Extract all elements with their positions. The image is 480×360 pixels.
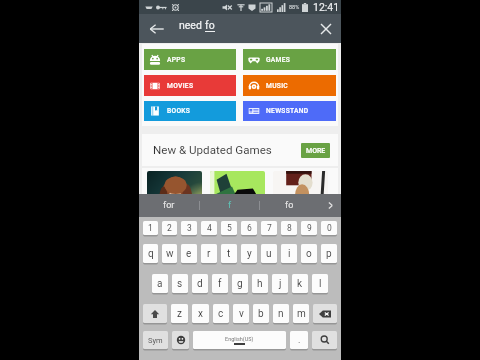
staticText: v	[239, 308, 244, 320]
button[interactable]: fo	[260, 194, 319, 217]
button[interactable]: d	[192, 274, 208, 293]
button[interactable]: a	[152, 274, 168, 293]
button[interactable]: for	[139, 194, 199, 217]
button[interactable]: f	[212, 274, 228, 293]
button[interactable]: x	[192, 304, 209, 323]
button[interactable]: q	[143, 244, 158, 263]
staticText: BOOKS	[167, 107, 191, 115]
button[interactable]: MOVIES	[144, 75, 236, 96]
staticText: MUSIC	[266, 82, 289, 90]
staticText: 5	[227, 223, 232, 233]
staticText: 3	[187, 223, 192, 233]
button[interactable]: Sym	[143, 331, 168, 349]
staticText: 1	[148, 223, 153, 233]
button[interactable]: 0	[321, 221, 337, 235]
button[interactable]: Shift	[143, 304, 167, 323]
button[interactable]: e	[181, 244, 197, 263]
button[interactable]: y	[241, 244, 257, 263]
staticText: NEWSSTAND	[266, 107, 309, 115]
staticText: z	[177, 308, 182, 320]
button[interactable]: 1	[143, 221, 158, 235]
button[interactable]	[147, 171, 202, 226]
button[interactable]: Clear search	[315, 14, 337, 43]
staticText: q	[148, 248, 154, 260]
button[interactable]: o	[301, 244, 317, 263]
staticText: r	[207, 248, 211, 260]
button[interactable]: f	[200, 194, 259, 217]
staticText: f	[228, 200, 232, 211]
button[interactable]: NEWSSTAND	[243, 101, 336, 121]
button[interactable]: 3	[181, 221, 197, 235]
button[interactable]: Back	[145, 14, 169, 43]
button[interactable]: APPS	[144, 49, 236, 70]
staticText: y	[247, 248, 252, 260]
button[interactable]: s	[172, 274, 188, 293]
staticText: for	[163, 200, 175, 211]
button[interactable]: GAMES	[243, 49, 336, 70]
staticText: fo	[285, 200, 294, 211]
button[interactable]: MORE	[301, 143, 330, 158]
button[interactable]: n	[273, 304, 289, 323]
button[interactable]: 2	[162, 221, 177, 235]
staticText: u	[266, 248, 272, 260]
button[interactable]: k	[292, 274, 308, 293]
staticText: 8	[287, 223, 292, 233]
button[interactable]: g	[232, 274, 248, 293]
staticText: 4	[207, 223, 212, 233]
button[interactable]: l	[312, 274, 328, 293]
button[interactable]: 5	[221, 221, 237, 235]
staticText: 2	[167, 223, 172, 233]
staticText: GAMES	[266, 56, 291, 64]
staticText: d	[197, 278, 203, 290]
staticText: 88%	[289, 4, 300, 10]
button[interactable]: v	[233, 304, 249, 323]
staticText: w	[166, 248, 174, 260]
staticText: 6	[247, 223, 252, 233]
button[interactable]: h	[252, 274, 268, 293]
button[interactable]: j	[272, 274, 288, 293]
staticText: 9	[307, 223, 312, 233]
staticText: j	[279, 278, 282, 290]
button[interactable]: z	[171, 304, 188, 323]
button[interactable]: 4	[201, 221, 217, 235]
button[interactable]	[273, 171, 328, 226]
staticText: MORE	[306, 147, 326, 155]
button[interactable]: More suggestions	[319, 194, 341, 217]
button[interactable]: w	[162, 244, 177, 263]
button[interactable]: p	[321, 244, 337, 263]
button[interactable]: 9	[301, 221, 317, 235]
staticText: b	[258, 308, 264, 320]
staticText: need	[179, 19, 205, 31]
staticText: t	[227, 248, 231, 260]
button[interactable]: r	[201, 244, 217, 263]
button[interactable]: Search	[312, 331, 337, 349]
staticText: a	[157, 278, 163, 290]
button[interactable]: m	[293, 304, 309, 323]
button[interactable]: Space	[193, 331, 286, 349]
staticText: English(US)	[225, 336, 254, 342]
staticText: 0	[327, 223, 332, 233]
staticText: .	[298, 335, 301, 346]
button[interactable]: 6	[241, 221, 257, 235]
button[interactable]: u	[261, 244, 277, 263]
button[interactable]	[210, 171, 265, 226]
staticText: h	[257, 278, 263, 290]
staticText: 7	[267, 223, 272, 233]
staticText: Sym	[148, 336, 163, 345]
button[interactable]: Emoji	[172, 331, 189, 349]
button[interactable]: BOOKS	[144, 101, 236, 121]
staticText: c	[218, 308, 224, 320]
button[interactable]: MUSIC	[243, 75, 336, 96]
button[interactable]: b	[253, 304, 269, 323]
button[interactable]: 8	[281, 221, 297, 235]
staticText: MOVIES	[167, 82, 194, 90]
button[interactable]: .	[290, 331, 308, 349]
button[interactable]: 7	[261, 221, 277, 235]
staticText: e	[186, 248, 192, 260]
staticText: p	[326, 248, 332, 260]
button[interactable]: Backspace	[313, 304, 337, 323]
button[interactable]: c	[213, 304, 229, 323]
staticText: o	[306, 248, 312, 260]
button[interactable]: i	[281, 244, 297, 263]
button[interactable]: t	[221, 244, 237, 263]
